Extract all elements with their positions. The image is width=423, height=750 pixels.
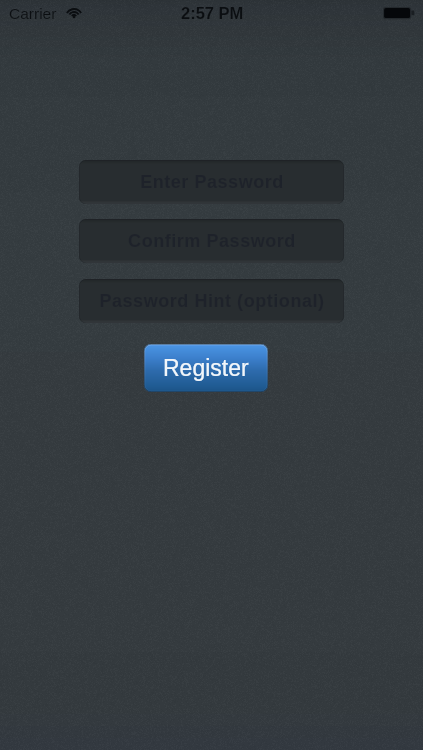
staticText: Confirm Password [128, 231, 296, 251]
other: Battery full [383, 7, 416, 20]
staticText: 2:57 PM [181, 4, 244, 22]
button[interactable]: Password Hint (optional) [79, 279, 344, 323]
button[interactable]: Confirm Password [79, 219, 344, 263]
staticText: Enter Password [140, 172, 284, 192]
staticText: Carrier [9, 5, 57, 22]
staticText: Register [163, 355, 249, 381]
staticText: Password Hint (optional) [99, 291, 325, 311]
button[interactable]: Enter Password [79, 160, 344, 204]
other: Wi-Fi signal strength [66, 7, 82, 18]
button[interactable]: Register [144, 344, 268, 392]
